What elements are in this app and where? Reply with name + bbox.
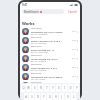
- staticText: Violin Sonata No. 9 in A: [31, 57, 58, 60]
- staticText: Q: [22, 86, 25, 90]
- staticText: Op. 73 · Concerto: [31, 42, 47, 45]
- staticText: BEETHOVEN: [31, 36, 42, 39]
- button[interactable]: BEETHOVEN: [20, 36, 80, 45]
- button[interactable]: Cancel: [67, 9, 78, 15]
- button[interactable]: Q: [21, 84, 25, 92]
- staticText: F: [43, 95, 45, 99]
- button[interactable]: Beethoven: [22, 9, 64, 14]
- staticText: Op. 67 · Orchestral: [31, 33, 48, 36]
- staticText: L: [73, 95, 75, 99]
- staticText: Symphony No. 9 in D Minor: [31, 75, 63, 78]
- staticText: W: [27, 86, 30, 90]
- button[interactable]: G: [47, 93, 52, 100]
- staticText: Op. 131 · Quartet: [31, 87, 47, 90]
- staticText: T: [46, 86, 48, 90]
- button[interactable]: T: [44, 84, 49, 92]
- button[interactable]: BEETHOVEN: [20, 54, 80, 63]
- button[interactable]: J: [59, 93, 64, 100]
- staticText: Op. 125 · Choral: [31, 78, 46, 81]
- button[interactable]: BEETHOVEN: [20, 45, 80, 54]
- staticText: I: [64, 86, 65, 90]
- staticText: P: [76, 86, 78, 90]
- staticText: A: [25, 95, 27, 99]
- staticText: 7:55: [72, 75, 76, 78]
- button[interactable]: F: [41, 93, 46, 100]
- button[interactable]: E: [32, 84, 37, 92]
- staticText: 6:19: [72, 84, 76, 87]
- staticText: Piano Concerto No. 5 in E: [31, 39, 61, 42]
- button[interactable]: Y: [50, 84, 55, 92]
- staticText: 8:02: [72, 66, 76, 69]
- staticText: Beethoven: [24, 10, 39, 14]
- button[interactable]: I: [62, 84, 67, 92]
- staticText: 6:48: [72, 39, 76, 42]
- staticText: Symphony No. 5 in C Minor: [31, 30, 63, 33]
- button[interactable]: BEETHOVEN: [20, 63, 80, 72]
- staticText: BEETHOVEN: [31, 81, 42, 84]
- staticText: Cancel: [68, 10, 77, 14]
- staticText: Works: [22, 21, 35, 26]
- staticText: E: [34, 86, 36, 90]
- button[interactable]: R: [38, 84, 43, 92]
- button[interactable]: K: [65, 93, 70, 100]
- staticText: H: [55, 95, 57, 99]
- button[interactable]: A: [24, 93, 28, 100]
- staticText: Y: [52, 86, 54, 90]
- staticText: Cello Sonata No. 3 in A: [31, 66, 58, 69]
- staticText: 9:14: [72, 57, 76, 60]
- staticText: Op. 69 · Chamber: [31, 69, 47, 72]
- button[interactable]: L: [71, 93, 76, 100]
- staticText: S: [31, 95, 33, 99]
- staticText: 5:32: [72, 48, 76, 51]
- staticText: BEETHOVEN: [31, 63, 42, 66]
- button[interactable]: H: [53, 93, 58, 100]
- staticText: String Quartet No. 14: [31, 84, 56, 87]
- staticText: U: [58, 86, 60, 90]
- staticText: K: [67, 95, 69, 99]
- staticText: BEETHOVEN: [31, 45, 42, 48]
- staticText: BEETHOVEN: [31, 72, 42, 75]
- staticText: BEETHOVEN: [31, 27, 42, 30]
- button[interactable]: O: [68, 84, 73, 92]
- staticText: G: [49, 95, 51, 99]
- staticText: Op. 27 · Piano solo: [31, 51, 48, 54]
- button[interactable]: P: [74, 84, 79, 92]
- staticText: O: [69, 86, 72, 90]
- button[interactable]: U: [56, 84, 61, 92]
- other: Open work: [77, 85, 78, 87]
- button[interactable]: W: [26, 84, 31, 92]
- staticText: Op. 47 · Chamber: [31, 60, 47, 63]
- button[interactable]: BEETHOVEN: [20, 81, 80, 90]
- staticText: 9:41: [22, 3, 28, 7]
- staticText: BEETHOVEN: [31, 54, 42, 57]
- button[interactable]: BEETHOVEN: [20, 27, 80, 36]
- staticText: D: [37, 95, 39, 99]
- button[interactable]: D: [35, 93, 40, 100]
- staticText: Piano Sonata No. 14: [31, 48, 55, 51]
- button[interactable]: BEETHOVEN: [20, 72, 80, 81]
- staticText: R: [40, 86, 42, 90]
- button[interactable]: S: [29, 93, 34, 100]
- staticText: 7:21: [72, 30, 76, 33]
